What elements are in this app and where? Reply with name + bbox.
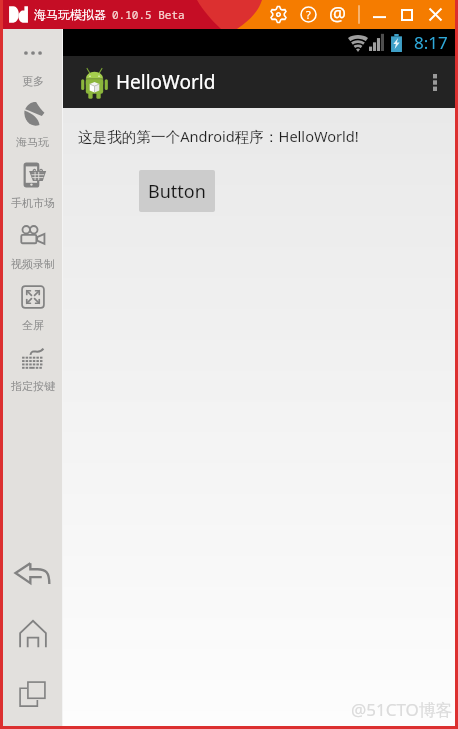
staticText: ? — [306, 7, 311, 22]
button[interactable]: Help — [293, 0, 323, 29]
button[interactable]: Home — [3, 604, 62, 664]
button[interactable]: Back — [3, 544, 62, 604]
staticText: @ — [329, 1, 347, 27]
staticText: 海马玩 — [16, 135, 49, 149]
staticText: 更多 — [22, 74, 44, 88]
staticText: HelloWorld — [116, 69, 216, 95]
button[interactable]: Minimize — [365, 0, 393, 29]
button[interactable]: Button — [139, 170, 215, 212]
button[interactable]: 更多 — [3, 38, 62, 99]
button[interactable]: 全屏 — [3, 282, 62, 343]
staticText: 手机市场 — [11, 196, 55, 210]
button[interactable]: Settings — [263, 0, 293, 29]
button[interactable]: More options — [415, 56, 455, 108]
staticText: 这是我的第一个Android程序：HelloWorld! — [78, 126, 359, 146]
staticText: 全屏 — [22, 318, 44, 332]
staticText: 海马玩模拟器 — [34, 7, 106, 22]
staticText: 视频录制 — [11, 257, 55, 271]
button[interactable]: 视频录制 — [3, 221, 62, 282]
staticText: 8:17 — [414, 31, 448, 54]
button[interactable]: 海马玩 — [3, 99, 62, 160]
button[interactable]: Account — [323, 0, 353, 29]
staticText: Button — [148, 179, 206, 204]
button[interactable]: Recents — [3, 664, 62, 724]
staticText: @51CTO博客 — [351, 698, 453, 721]
staticText: 0.10.5 Beta — [112, 7, 185, 22]
button[interactable]: Close — [421, 0, 449, 29]
button[interactable]: 指定按键 — [3, 343, 62, 404]
staticText: 指定按键 — [11, 379, 55, 393]
button[interactable]: Maximize — [393, 0, 421, 29]
button[interactable]: 手机市场 — [3, 160, 62, 221]
